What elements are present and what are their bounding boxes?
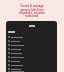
button[interactable] [6, 51, 57, 55]
staticText: Create & manage grocery lists from anywh… [0, 4, 64, 17]
button[interactable] [6, 47, 57, 51]
button[interactable] [6, 67, 57, 71]
button[interactable] [6, 63, 57, 67]
button[interactable] [6, 39, 57, 43]
button[interactable] [6, 59, 57, 63]
button[interactable] [6, 35, 57, 39]
button[interactable] [6, 71, 57, 72]
button[interactable] [6, 43, 57, 47]
button[interactable] [6, 55, 57, 59]
